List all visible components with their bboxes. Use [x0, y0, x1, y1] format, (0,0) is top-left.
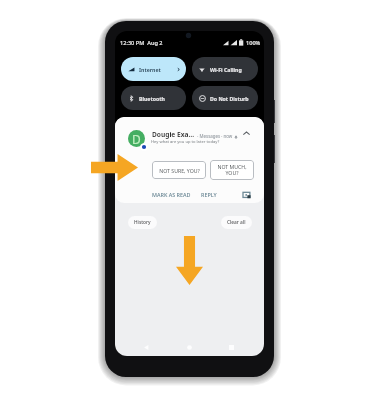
staticText: History: [134, 219, 151, 226]
staticText: 100%: [246, 39, 261, 47]
button[interactable]: MARK AS READ: [152, 191, 191, 198]
button[interactable]: Bluetooth: [121, 86, 186, 110]
button[interactable]: REPLY: [201, 191, 217, 198]
button[interactable]: Internet: [121, 57, 186, 81]
button[interactable]: Wi-Fi Calling: [192, 57, 258, 81]
button[interactable]: Home: [185, 343, 194, 352]
button[interactable]: Clear all: [221, 216, 252, 229]
button[interactable]: Do Not Disturb: [192, 86, 258, 110]
button[interactable]: D: [115, 117, 264, 203]
button[interactable]: Back: [142, 343, 151, 352]
staticText: Clear all: [227, 219, 246, 226]
button[interactable]: NOT MUCH, YOU?: [210, 160, 254, 180]
button[interactable]: Smart reply settings: [243, 192, 251, 200]
staticText: Dougie Exa…: [152, 130, 195, 139]
staticText: NOT MUCH, YOU?: [217, 163, 247, 177]
staticText: Hey what are you up to later today?: [151, 139, 220, 145]
button[interactable]: History: [128, 216, 157, 229]
staticText: · Messages · now: [195, 133, 234, 139]
button[interactable]: NOT SURE, YOU?: [152, 161, 206, 179]
staticText: D: [132, 131, 141, 147]
button[interactable]: Collapse: [242, 129, 251, 138]
staticText: Wi-Fi Calling: [210, 66, 242, 73]
button[interactable]: Recents: [227, 343, 236, 352]
staticText: Bluetooth: [139, 95, 165, 102]
staticText: NOT SURE, YOU?: [159, 167, 200, 174]
staticText: Internet: [139, 66, 161, 73]
staticText: 12:30 PM Aug 2: [120, 39, 163, 47]
staticText: Do Not Disturb: [210, 95, 249, 102]
